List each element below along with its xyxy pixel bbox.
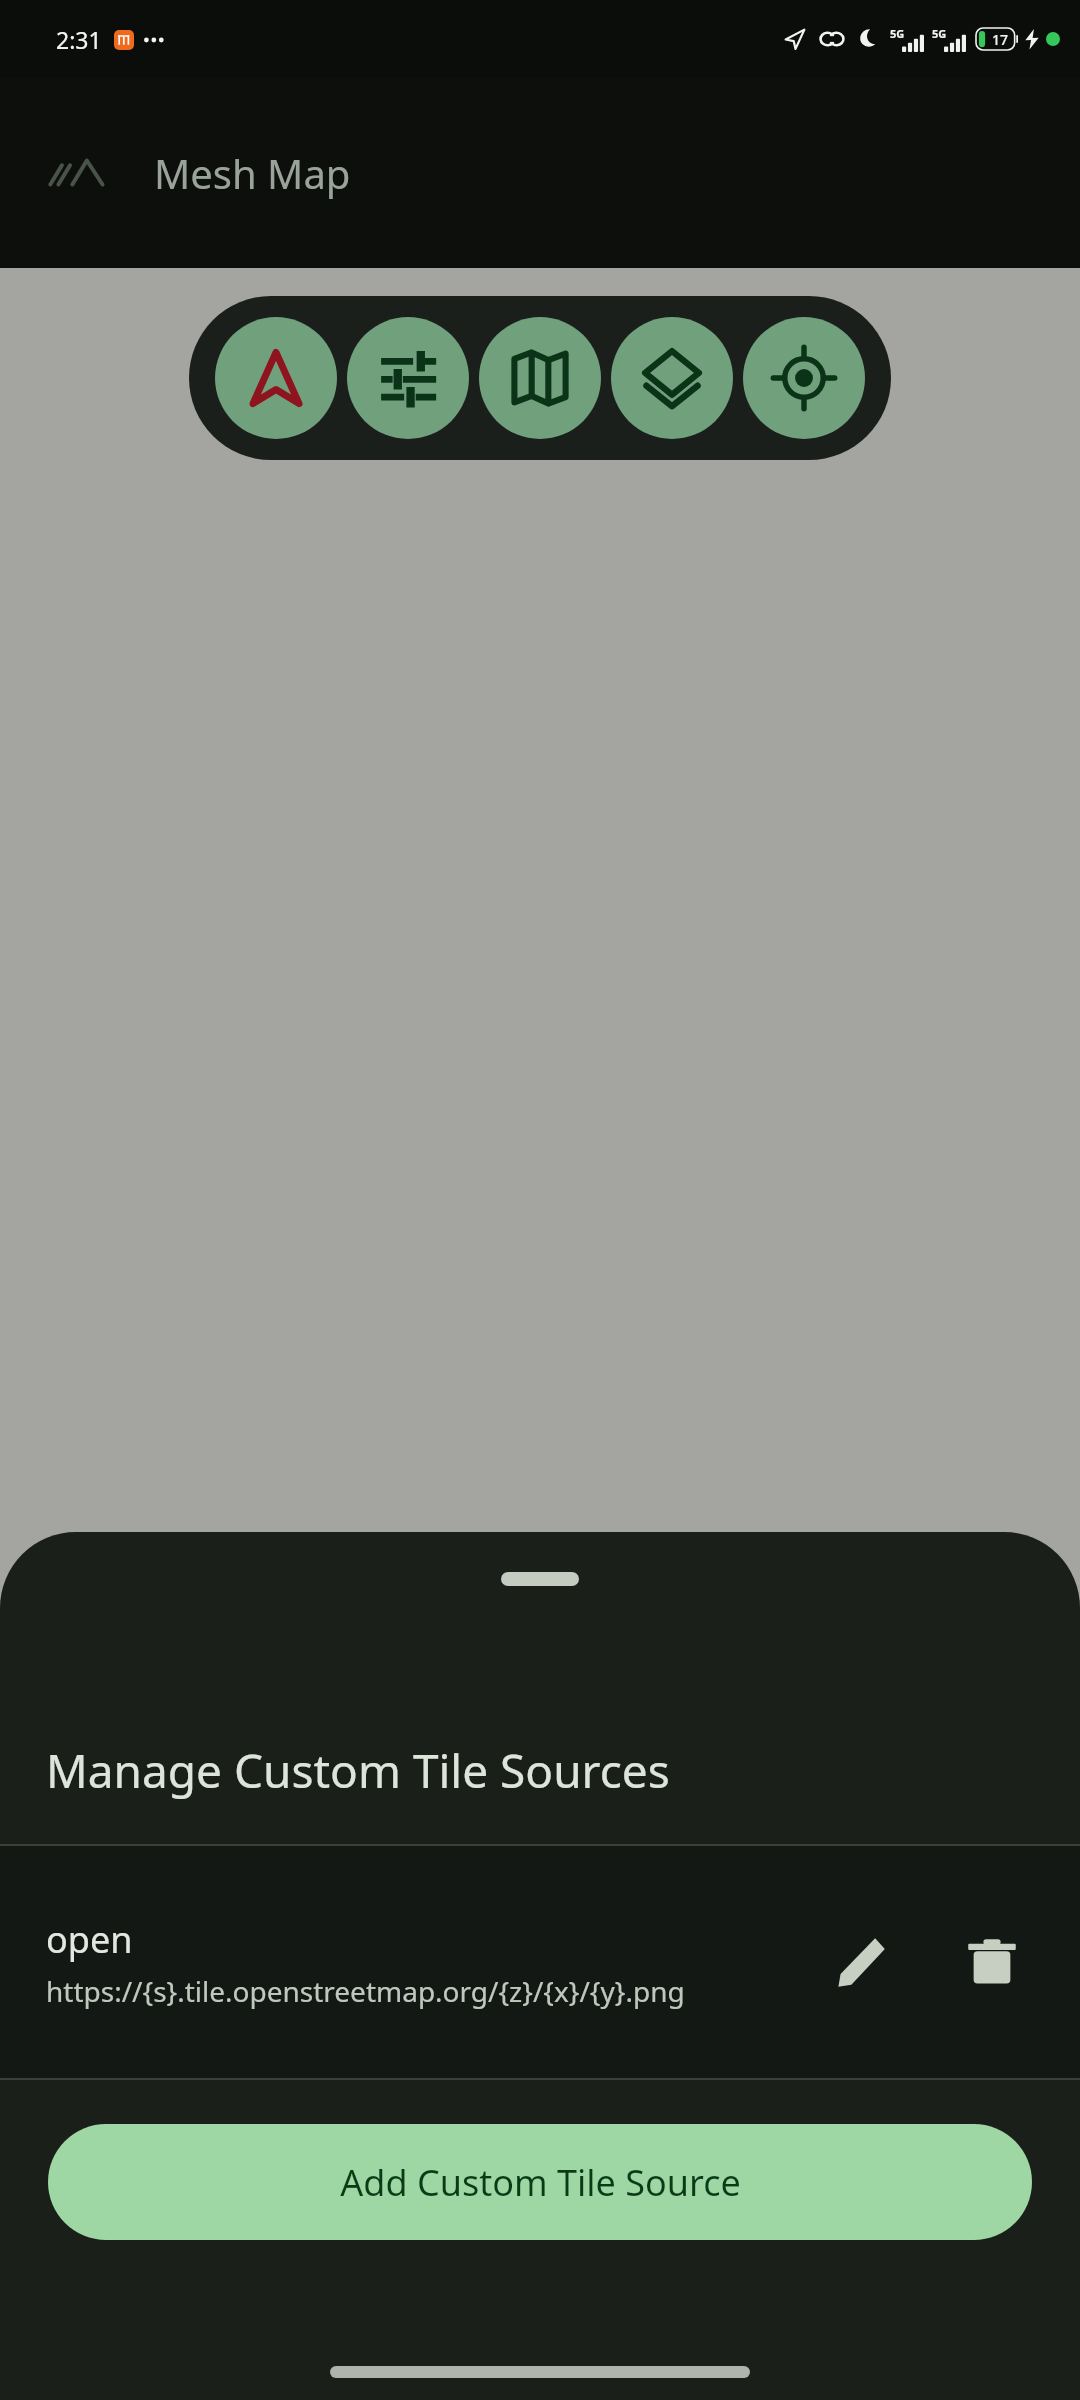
staticText: Add Custom Tile Source — [340, 2158, 741, 2207]
button[interactable]: My location — [743, 317, 865, 439]
staticText: 5G — [932, 26, 947, 41]
staticText: https://{s}.tile.openstreetmap.org/{z}/{… — [46, 1972, 685, 2010]
button[interactable]: Map — [479, 317, 601, 439]
button[interactable]: Delete — [944, 1914, 1040, 2010]
staticText: open — [46, 1915, 133, 1964]
staticText: 2:31 — [56, 24, 102, 55]
staticText: 17 — [992, 30, 1009, 49]
staticText: Manage Custom Tile Sources — [46, 1739, 670, 1802]
button[interactable]: Filter settings — [347, 317, 469, 439]
button[interactable]: Edit — [812, 1914, 908, 2010]
staticText: Mesh Map — [154, 146, 351, 200]
button[interactable]: Layers — [611, 317, 733, 439]
button[interactable]: Add Custom Tile Source — [48, 2124, 1032, 2240]
staticText: 5G — [890, 26, 905, 41]
button[interactable]: open — [0, 1846, 1080, 2078]
button[interactable]: Navigation — [215, 317, 337, 439]
